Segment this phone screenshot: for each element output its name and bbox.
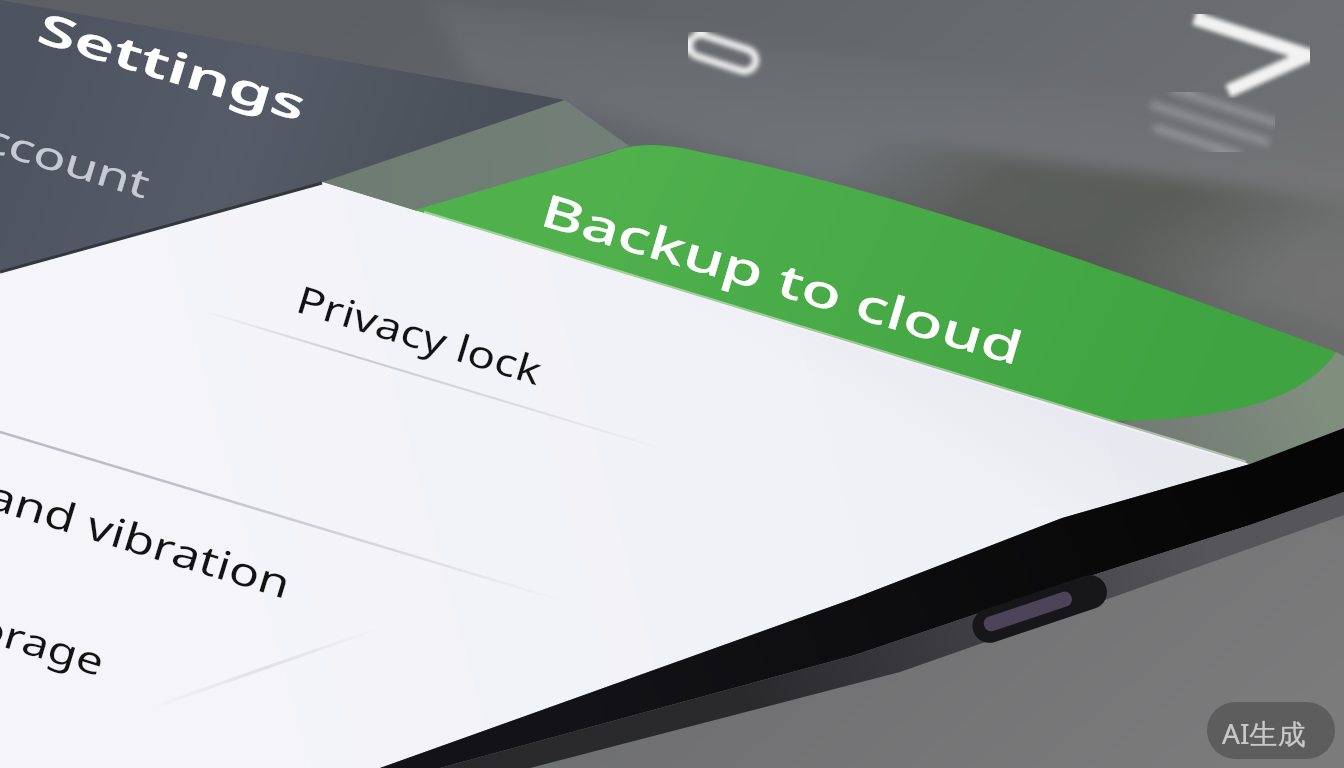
staticText: Storage <box>0 586 111 687</box>
staticText: Backup to cloud <box>535 178 1031 378</box>
button[interactable]: Backup to cloud <box>430 150 1330 420</box>
button[interactable]: Sound and vibration <box>0 400 620 570</box>
button[interactable]: Settings, Account <box>0 0 560 190</box>
button[interactable]: Privacy lock <box>0 240 700 420</box>
staticText: AI生成 <box>1222 714 1306 752</box>
staticText: Privacy lock <box>291 272 549 396</box>
staticText: Settings <box>31 0 314 133</box>
staticText: Account <box>0 100 157 209</box>
staticText: Sound and vibration <box>0 418 298 610</box>
button[interactable]: Storage <box>0 566 560 726</box>
button[interactable]: AI generated <box>1207 702 1335 759</box>
